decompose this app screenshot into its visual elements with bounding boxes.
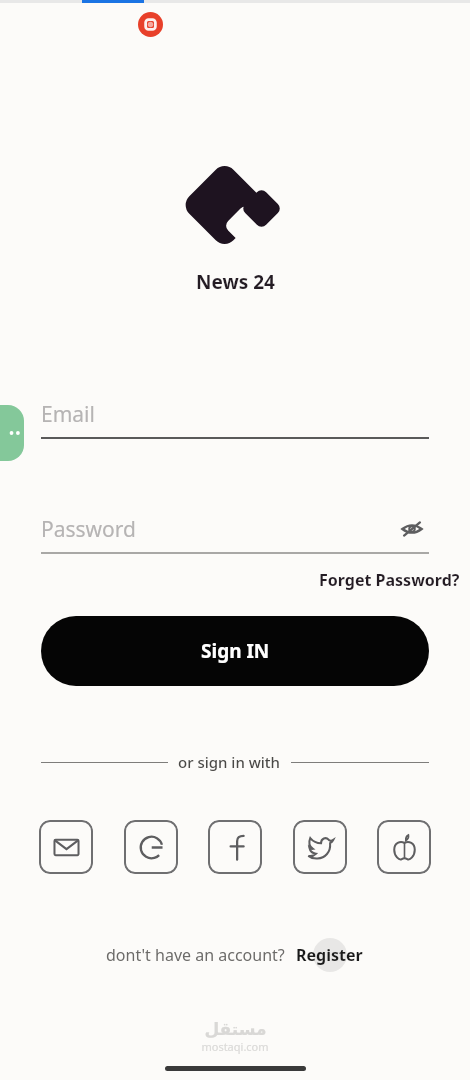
staticText: Email [41, 400, 95, 429]
button[interactable]: Sign in with Apple [377, 820, 431, 874]
button[interactable]: Show password [395, 512, 429, 546]
staticText: mostaqi.com [201, 1039, 269, 1054]
staticText: مستقل [204, 1019, 267, 1039]
button[interactable]: Sign in with Twitter [293, 820, 347, 874]
button[interactable]: Recorder controls [0, 405, 24, 461]
button[interactable]: Sign in with Facebook [208, 820, 262, 874]
button[interactable]: Email [41, 391, 429, 437]
staticText: Password [41, 515, 136, 544]
button[interactable]: Sign IN [41, 616, 429, 686]
staticText: Sign IN [201, 638, 270, 664]
staticText: Forget Password? [319, 569, 460, 591]
staticText: Register [296, 944, 363, 966]
button[interactable]: Register [294, 936, 365, 974]
staticText: dont't have an account? [106, 944, 285, 966]
staticText: or sign in with [178, 752, 281, 772]
button[interactable]: Forget Password? [315, 567, 464, 593]
button[interactable]: Sign in with Google [124, 820, 178, 874]
button[interactable]: Stop recording [138, 12, 163, 37]
staticText: News 24 [196, 269, 275, 295]
button[interactable]: Password [41, 506, 429, 552]
button[interactable]: Sign in with email [39, 820, 93, 874]
